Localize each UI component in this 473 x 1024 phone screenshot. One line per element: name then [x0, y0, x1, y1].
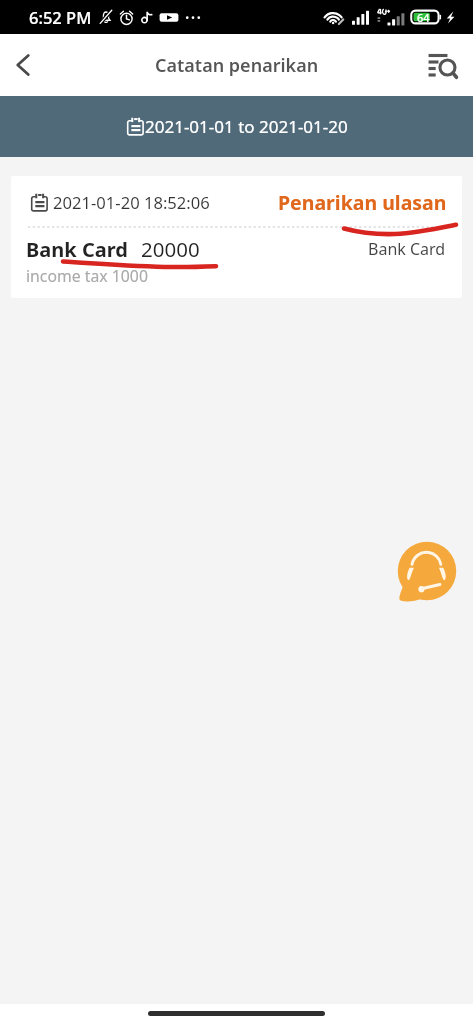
- button[interactable]: 2021-01-20 18:52:06: [11, 176, 462, 298]
- staticText: Penarikan ulasan: [278, 189, 447, 216]
- staticText: Bank Card: [26, 236, 128, 263]
- staticText: income tax 1000: [26, 265, 148, 287]
- button[interactable]: Customer service: [394, 538, 460, 604]
- staticText: 64: [417, 10, 430, 25]
- staticText: Bank Card: [368, 238, 446, 260]
- staticText: 2021-01-01 to 2021-01-20: [145, 115, 348, 138]
- button[interactable]: 2021-01-01 to 2021-01-20: [0, 96, 473, 157]
- staticText: 6:52 PM: [29, 6, 92, 28]
- button[interactable]: Back: [0, 42, 46, 88]
- staticText: 2021-01-20 18:52:06: [53, 191, 210, 214]
- staticText: 20000: [141, 235, 200, 263]
- button[interactable]: Search records: [420, 43, 464, 87]
- staticText: Catatan penarikan: [155, 53, 319, 78]
